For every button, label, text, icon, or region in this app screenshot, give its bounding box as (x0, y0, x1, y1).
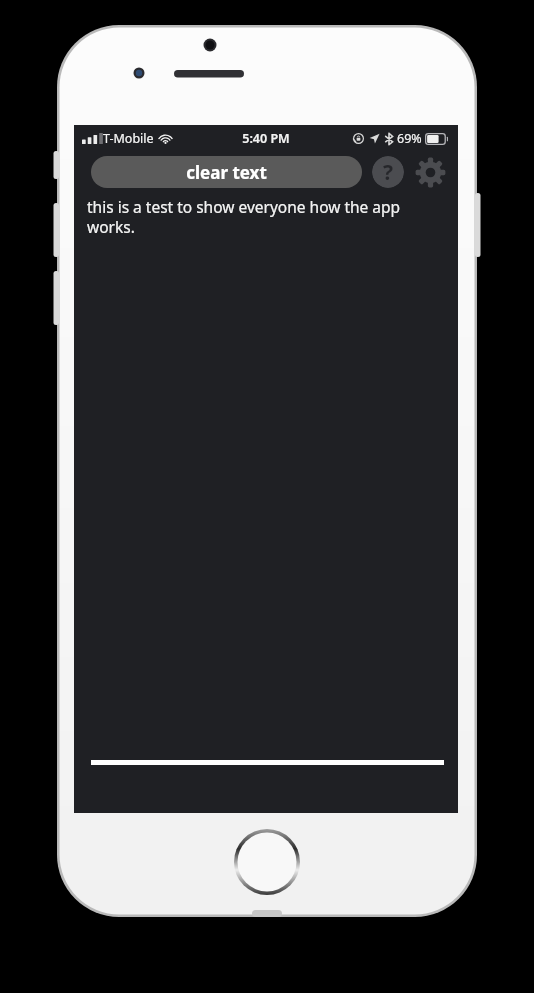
staticText: 69% (397, 130, 422, 147)
staticText: clear text (186, 161, 267, 184)
button[interactable]: Settings (413, 155, 447, 189)
button[interactable]: clear text (91, 156, 362, 188)
staticText: 5:40 PM (242, 130, 290, 147)
staticText: T-Mobile (103, 130, 154, 147)
staticText: ? (383, 158, 394, 187)
button[interactable]: Help (372, 156, 404, 188)
staticText: this is a test to show everyone how the … (87, 196, 438, 238)
